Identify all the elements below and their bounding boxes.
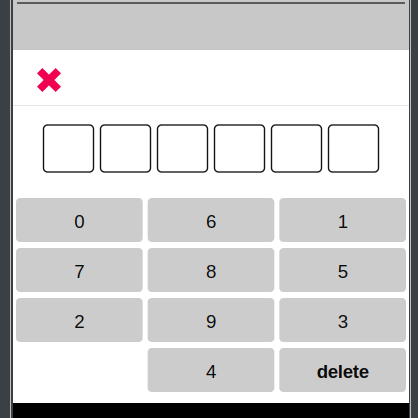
button[interactable]: PIN code [43,106,378,198]
button[interactable]: 8 [148,248,274,292]
staticText: 1 [338,211,348,232]
staticText: 9 [206,311,216,332]
staticText: 8 [206,261,216,282]
staticText: 6 [206,211,216,232]
button[interactable]: Close [13,50,73,105]
button[interactable]: 4 [148,348,274,392]
button[interactable]: 1 [279,198,406,242]
staticText: 3 [338,311,348,332]
staticText: 0 [74,211,84,232]
button[interactable]: 7 [16,248,143,292]
button[interactable]: 6 [148,198,274,242]
staticText: 2 [74,311,84,332]
staticText: 4 [206,361,216,382]
button[interactable]: 9 [148,298,274,342]
button[interactable]: 2 [16,298,143,342]
staticText: 7 [74,261,84,282]
staticText: delete [317,361,369,382]
button[interactable]: 5 [279,248,406,292]
button[interactable]: 0 [16,198,143,242]
button[interactable]: 3 [279,298,406,342]
staticText: 5 [338,261,348,282]
button[interactable]: delete [279,348,406,392]
